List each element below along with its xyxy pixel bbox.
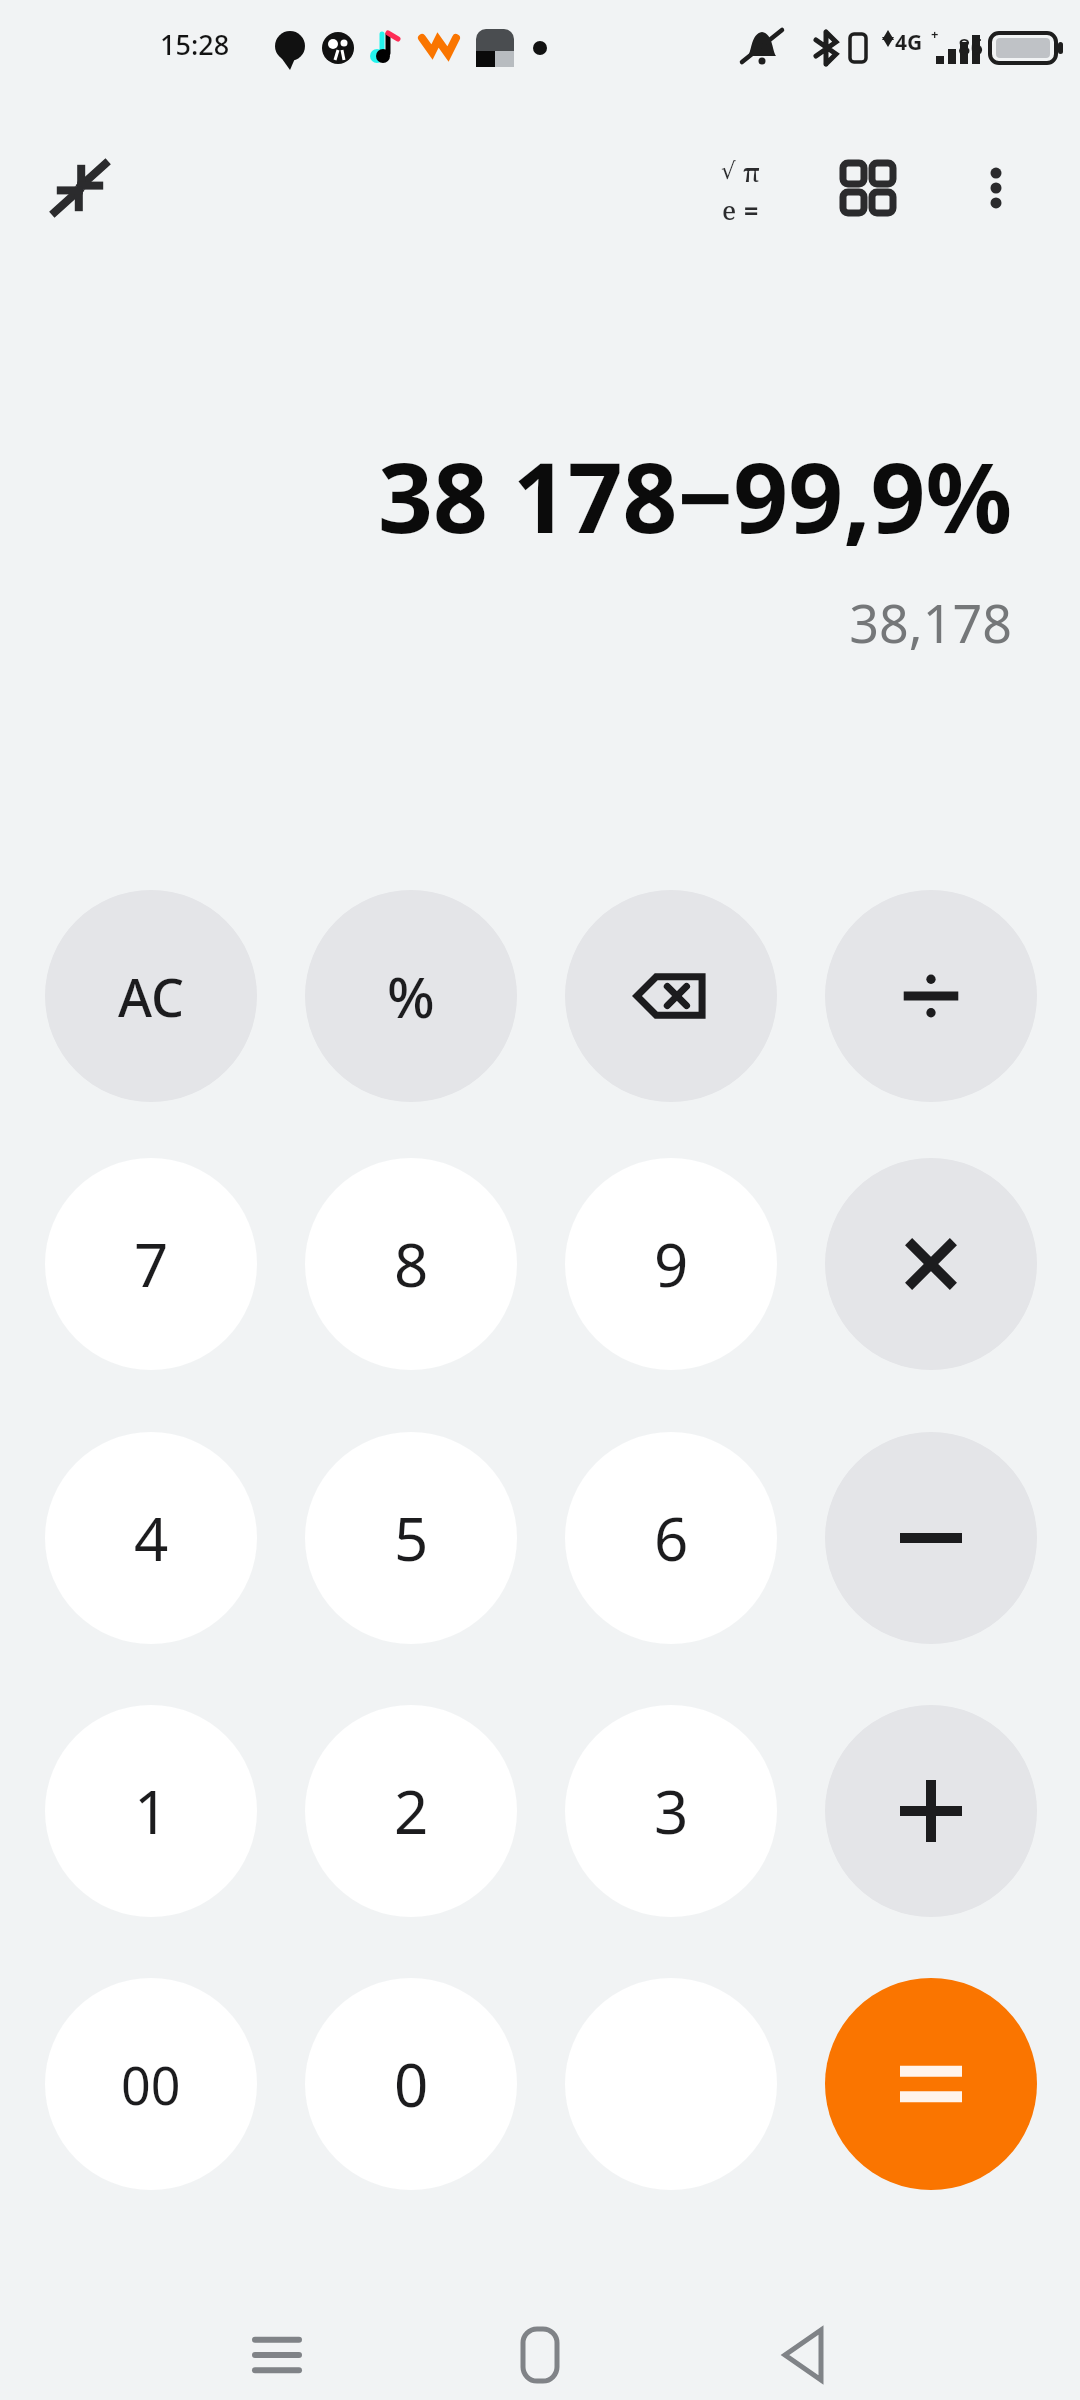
staticText: 15:28 <box>160 26 230 63</box>
button[interactable]: Divide <box>825 890 1037 1102</box>
button[interactable]: 00 <box>45 1978 257 2190</box>
button[interactable]: 2 <box>305 1705 517 1917</box>
staticText: 9 <box>654 1223 689 1305</box>
staticText: 3 <box>654 1770 689 1852</box>
button[interactable]: 9 <box>565 1158 777 1370</box>
staticText: 4G <box>895 28 923 57</box>
button[interactable]: Recent apps <box>222 2300 332 2400</box>
button[interactable]: Scientific mode <box>692 142 788 238</box>
button[interactable]: Equals <box>825 1978 1037 2190</box>
button[interactable]: % <box>305 890 517 1102</box>
button[interactable]: Collapse <box>34 142 126 234</box>
button[interactable]: 7 <box>45 1158 257 1370</box>
staticText: 4 <box>134 1497 169 1579</box>
staticText: 38,178 <box>849 587 1012 658</box>
button[interactable]: Layout <box>822 142 914 234</box>
button[interactable]: , <box>565 1978 777 2190</box>
staticText: + <box>931 25 939 43</box>
button[interactable]: Backspace <box>565 890 777 1102</box>
button[interactable]: 6 <box>565 1432 777 1644</box>
staticText: = <box>744 193 759 227</box>
staticText: 7 <box>134 1223 169 1305</box>
button[interactable]: More options <box>950 142 1042 234</box>
staticText: √ <box>721 158 736 185</box>
button[interactable]: AC <box>45 890 257 1102</box>
button[interactable]: 8 <box>305 1158 517 1370</box>
button[interactable]: Back <box>748 2300 858 2400</box>
staticText: 8 <box>394 1223 429 1305</box>
staticText: AC <box>118 961 185 1032</box>
staticText: 00 <box>121 2049 181 2120</box>
button[interactable]: 0 <box>305 1978 517 2190</box>
button[interactable]: Multiply <box>825 1158 1037 1370</box>
staticText: 0 <box>394 2043 429 2125</box>
staticText: 1 <box>134 1770 169 1852</box>
staticText: 2 <box>394 1770 429 1852</box>
button[interactable]: Minus <box>825 1432 1037 1644</box>
button[interactable]: 1 <box>45 1705 257 1917</box>
staticText: e <box>722 192 737 227</box>
button[interactable]: Plus <box>825 1705 1037 1917</box>
staticText: 6 <box>654 1497 689 1579</box>
button[interactable]: Home <box>485 2300 595 2400</box>
staticText: % <box>387 958 435 1034</box>
staticText: π <box>743 154 760 189</box>
staticText: 5 <box>394 1497 429 1579</box>
button[interactable]: 3 <box>565 1705 777 1917</box>
button[interactable]: 5 <box>305 1432 517 1644</box>
button[interactable]: 4 <box>45 1432 257 1644</box>
staticText: 38 178−99,9% <box>378 430 1012 561</box>
staticText: 86 <box>958 31 984 61</box>
